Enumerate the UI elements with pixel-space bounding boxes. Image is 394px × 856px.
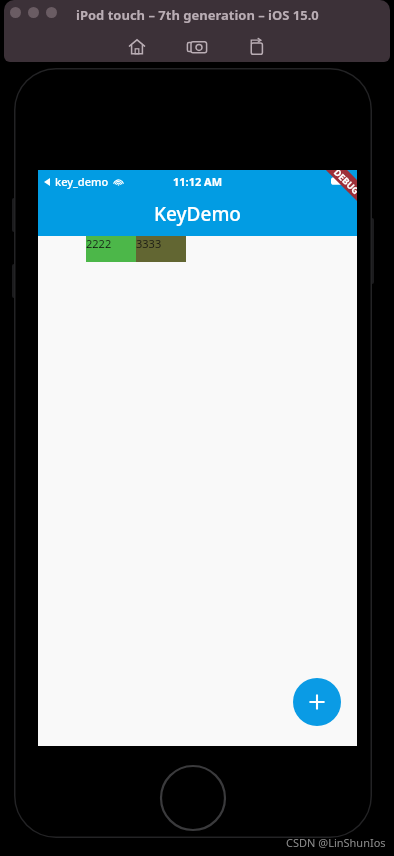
button[interactable]: Screenshot <box>180 30 214 62</box>
button[interactable] <box>10 7 21 18</box>
staticText: key_demo <box>55 174 109 189</box>
button[interactable]: Add <box>293 678 341 726</box>
button[interactable] <box>46 7 57 18</box>
staticText: KeyDemo <box>154 201 241 227</box>
button[interactable] <box>28 7 39 18</box>
button[interactable]: 2222 <box>86 236 136 262</box>
button[interactable]: Home <box>120 30 154 62</box>
staticText: DEBUG <box>332 170 357 196</box>
staticText: 2222 <box>86 236 112 251</box>
staticText: 11:12 AM <box>173 174 223 189</box>
button[interactable]: Rotate <box>240 30 274 62</box>
button[interactable]: Home button <box>159 764 227 832</box>
staticText: 3333 <box>136 236 162 251</box>
staticText: CSDN @LinShunIos <box>286 835 386 850</box>
staticText: iPod touch – 7th generation – iOS 15.0 <box>76 6 319 24</box>
button[interactable]: 3333 <box>136 236 186 262</box>
